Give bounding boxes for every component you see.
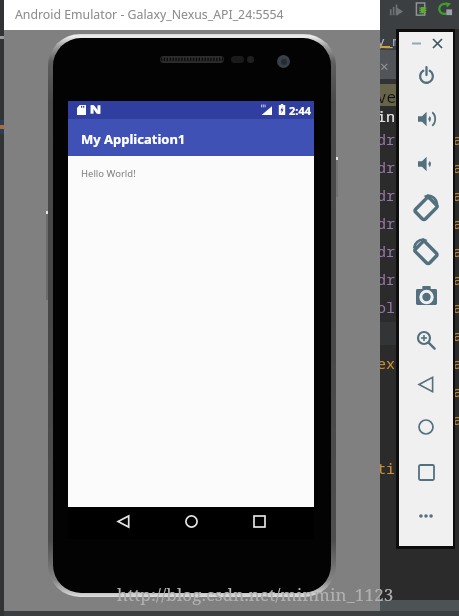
staticText: a: [453, 353, 458, 373]
staticText: ×: [380, 56, 389, 76]
staticText: dr: [377, 213, 396, 233]
button[interactable]: Home: [408, 409, 444, 445]
button[interactable]: Rotate right: [408, 234, 444, 270]
staticText: ti: [377, 458, 396, 478]
button[interactable]: Zoom: [408, 322, 444, 358]
button[interactable]: Rotate left: [408, 190, 444, 226]
staticText: 2:44: [289, 103, 311, 118]
button[interactable]: My Application1: [68, 119, 314, 156]
staticText: dr: [377, 241, 396, 261]
staticText: My Application1: [81, 130, 186, 148]
button[interactable]: Overview: [408, 454, 444, 490]
button[interactable]: Close: [429, 35, 445, 51]
button[interactable]: Power: [408, 57, 444, 93]
button[interactable]: Back: [105, 505, 141, 537]
staticText: dr: [377, 269, 396, 289]
staticText: a: [453, 185, 458, 205]
button[interactable]: Take screenshot: [408, 277, 444, 313]
staticText: y_m: [377, 32, 401, 50]
staticText: a: [453, 213, 458, 233]
staticText: dr: [377, 157, 396, 177]
staticText: Android Emulator - Galaxy_Nexus_API_24:5…: [15, 6, 284, 23]
button[interactable]: Back: [408, 366, 444, 402]
staticText: http://blog.csdn.net/minmin_1123: [117, 583, 394, 606]
staticText: ve: [377, 86, 397, 108]
staticText: a: [453, 325, 458, 345]
staticText: in: [377, 106, 396, 126]
button[interactable]: Recent apps: [241, 505, 277, 537]
button[interactable]: Volume down: [408, 146, 444, 182]
staticText: a: [453, 269, 458, 289]
button[interactable]: Volume up: [408, 101, 444, 137]
staticText: ol: [377, 297, 396, 317]
staticText: a: [453, 409, 458, 429]
staticText: a: [453, 129, 458, 149]
button[interactable]: Debug: [414, 2, 430, 18]
button[interactable]: Minimize: [408, 35, 424, 51]
button[interactable]: More: [408, 498, 444, 534]
button[interactable]: Home: [173, 505, 209, 537]
staticText: ex: [377, 353, 396, 373]
staticText: a: [453, 297, 458, 317]
staticText: dr: [377, 185, 396, 205]
staticText: a: [453, 241, 458, 261]
staticText: a: [453, 381, 458, 401]
staticText: dr: [377, 129, 396, 149]
staticText: Hello World!: [81, 167, 136, 180]
staticText: a: [453, 157, 458, 177]
button[interactable]: Run: [388, 2, 404, 18]
button[interactable]: Rerun: [438, 2, 454, 18]
